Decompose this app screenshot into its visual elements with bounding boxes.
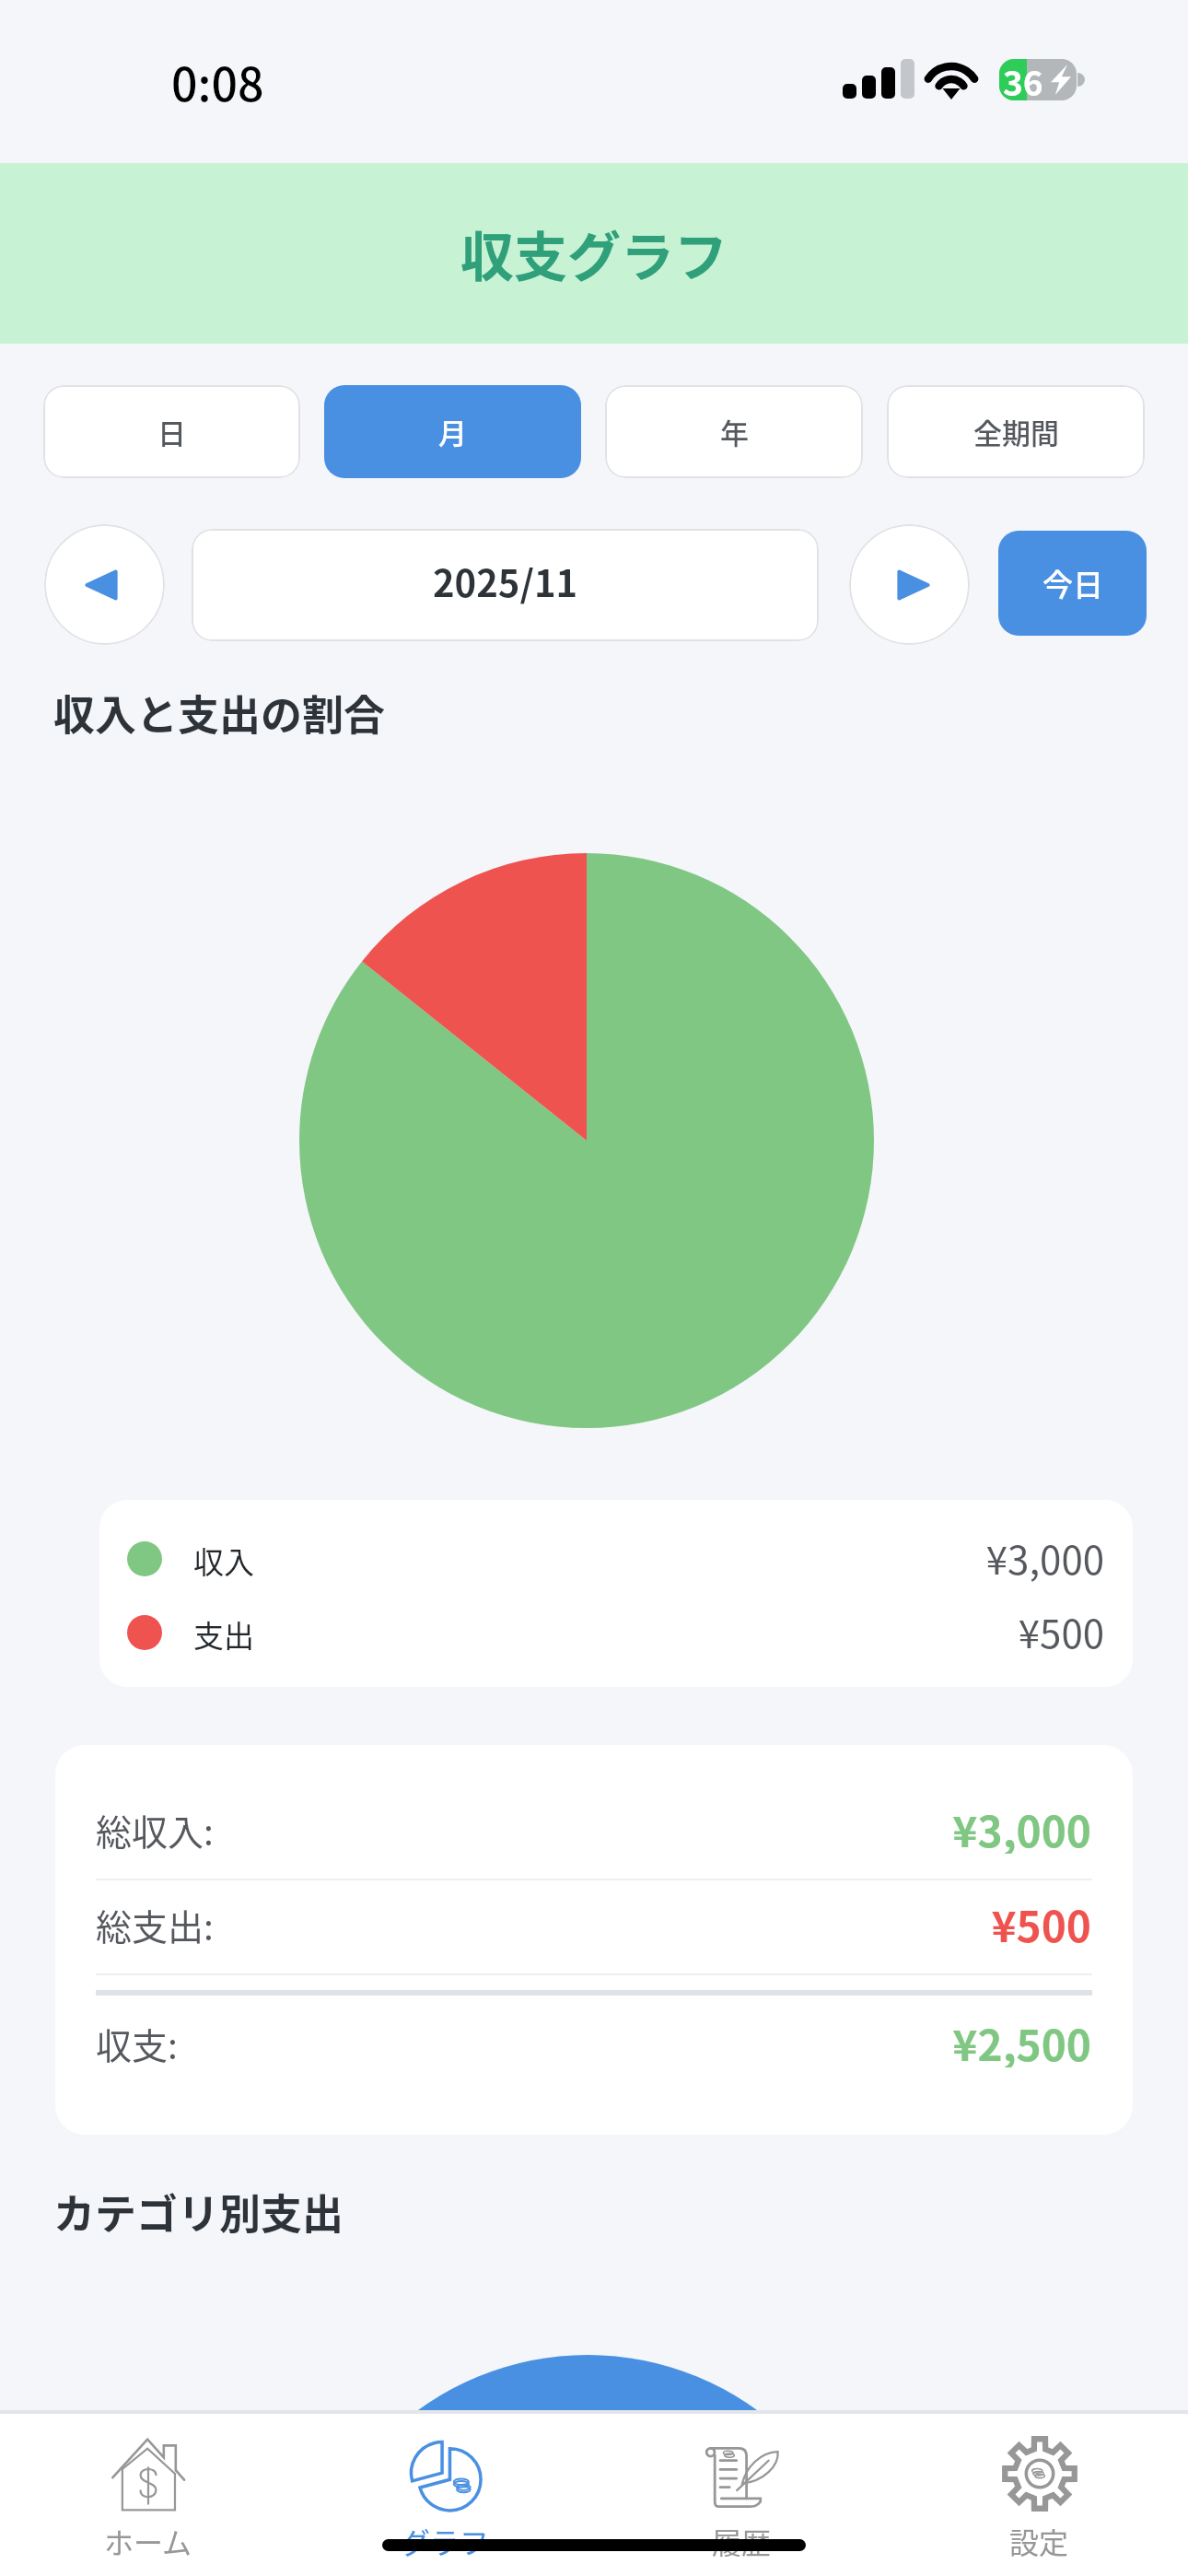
- staticText: ¥500: [774, 1893, 1091, 1949]
- staticText: 全期間: [973, 411, 1059, 452]
- staticText: 収支:: [96, 2018, 178, 2069]
- staticText: 収入と支出の割合: [53, 683, 386, 743]
- button[interactable]: Home: [0, 2414, 297, 2576]
- button[interactable]: History: [593, 2414, 891, 2576]
- staticText: 月: [438, 411, 467, 452]
- staticText: 今日: [1042, 561, 1103, 605]
- staticText: ¥500: [875, 1603, 1104, 1658]
- staticText: 設定: [1009, 2520, 1069, 2562]
- staticText: 履歴: [712, 2520, 772, 2562]
- staticText: ¥2,500: [774, 2012, 1091, 2067]
- button[interactable]: Previous period: [44, 524, 165, 645]
- staticText: 0:08: [171, 48, 264, 114]
- staticText: ¥3,000: [875, 1529, 1104, 1585]
- staticText: 支出: [193, 1612, 254, 1657]
- staticText: 36: [1003, 59, 1043, 98]
- staticText: 日: [157, 411, 186, 452]
- staticText: 収入: [193, 1539, 254, 1583]
- staticText: カテゴリ別支出: [53, 2182, 344, 2242]
- button[interactable]: 日: [43, 385, 300, 478]
- staticText: 総収入:: [96, 1804, 214, 1856]
- button[interactable]: Graph: [297, 2414, 593, 2576]
- staticText: グラフ: [401, 2520, 490, 2562]
- staticText: 年: [720, 411, 749, 452]
- button[interactable]: 年: [605, 385, 863, 478]
- button[interactable]: 2025/11: [192, 529, 819, 641]
- button[interactable]: 今日: [998, 531, 1147, 636]
- staticText: ホーム: [104, 2520, 192, 2562]
- staticText: 2025/11: [433, 555, 578, 608]
- staticText: 収支グラフ: [460, 215, 728, 292]
- button[interactable]: 全期間: [887, 385, 1145, 478]
- button[interactable]: Next period: [849, 524, 970, 645]
- button[interactable]: 月: [324, 385, 581, 478]
- staticText: 総支出:: [96, 1899, 214, 1950]
- button[interactable]: Settings: [891, 2414, 1188, 2576]
- staticText: ¥3,000: [774, 1798, 1091, 1854]
